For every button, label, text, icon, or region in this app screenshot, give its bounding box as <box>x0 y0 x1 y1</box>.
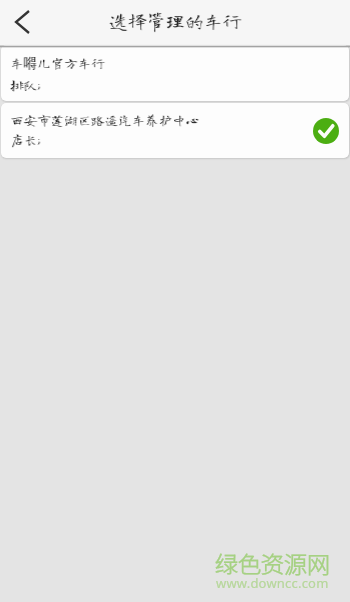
staticText: 西安市莲湖区路遥汽车养护中心 <box>10 113 199 127</box>
button[interactable]: 车嘚儿官方车行 <box>1 45 349 101</box>
staticText: 绿色资源网 <box>215 546 330 579</box>
button[interactable]: 西安市莲湖区路遥汽车养护中心 <box>1 103 349 158</box>
staticText: 排队; <box>10 78 40 92</box>
staticText: 西安市莲湖区路遥汽车养护中心 <box>11 113 200 127</box>
staticText: 排队; <box>11 78 41 92</box>
staticText: 车嘚儿官方车行 <box>10 55 105 72</box>
staticText: 选择管理的车行 <box>109 11 243 30</box>
staticText: 车嘚儿官方车行 <box>11 55 106 72</box>
button[interactable]: Back <box>0 0 46 45</box>
staticText: www.downcc.com <box>216 574 329 592</box>
staticText: 店长; <box>10 133 40 147</box>
staticText: 选择管理的车行 <box>108 11 242 30</box>
staticText: 店长; <box>11 133 41 147</box>
